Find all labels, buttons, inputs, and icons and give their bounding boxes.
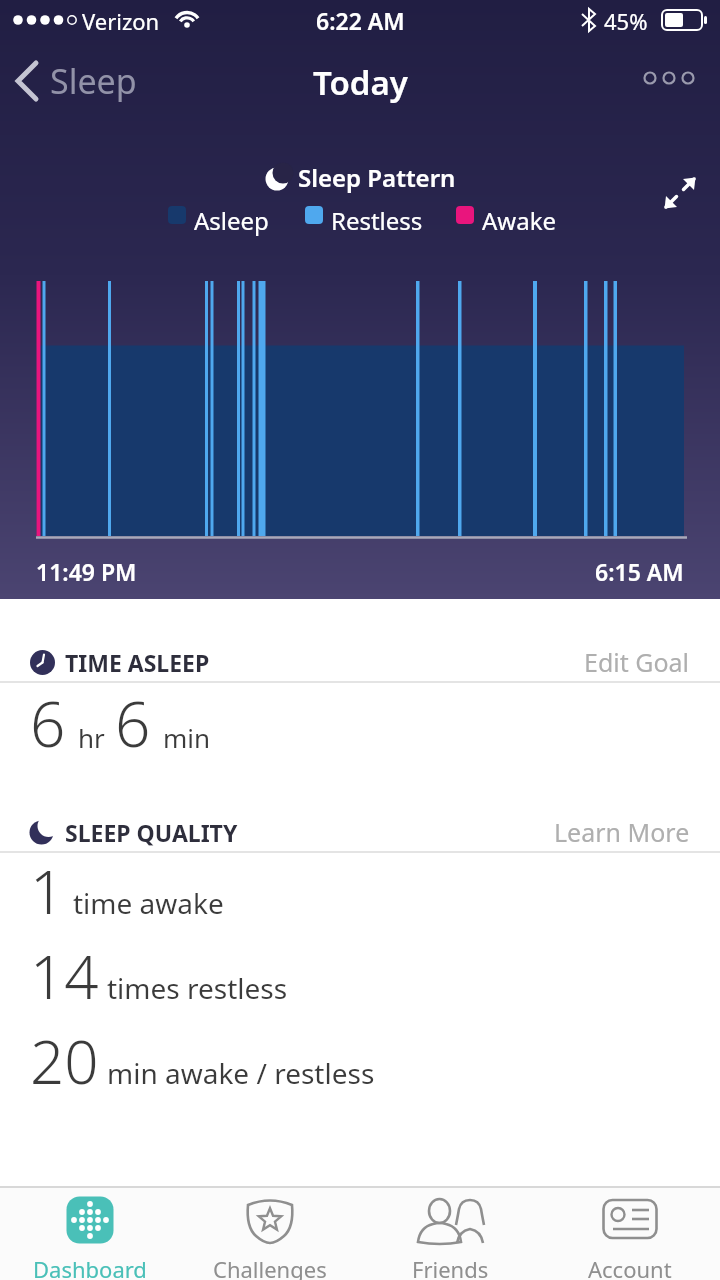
staticText: 45% xyxy=(604,6,648,36)
staticText: 20 xyxy=(30,1020,99,1102)
staticText: Dashboard xyxy=(33,1254,147,1280)
staticText: Asleep xyxy=(194,204,269,237)
staticText: 6:22 AM xyxy=(316,5,405,36)
staticText: times restless xyxy=(107,969,288,1007)
staticText: Account xyxy=(588,1254,672,1280)
staticText: min awake / restless xyxy=(107,1054,375,1092)
staticText: SLEEP QUALITY xyxy=(65,817,238,848)
staticText: hr xyxy=(78,720,105,755)
staticText: 6 xyxy=(115,681,151,765)
button[interactable] xyxy=(656,170,704,218)
button[interactable]: Sleep xyxy=(12,58,137,104)
staticText: Verizon xyxy=(82,6,160,36)
staticText: Awake xyxy=(482,204,557,237)
staticText: Friends xyxy=(412,1254,489,1280)
staticText: 11:49 PM xyxy=(36,556,137,587)
staticText: Learn More xyxy=(554,815,690,849)
staticText: Sleep Pattern xyxy=(298,161,456,194)
staticText: Edit Goal xyxy=(584,645,690,679)
button[interactable] xyxy=(635,62,701,94)
button[interactable]: Learn More xyxy=(554,815,690,849)
button[interactable]: Friends xyxy=(360,1188,540,1280)
staticText: Challenges xyxy=(213,1254,327,1280)
button[interactable]: Edit Goal xyxy=(584,645,690,679)
button[interactable]: Dashboard xyxy=(0,1188,180,1280)
button[interactable]: Challenges xyxy=(180,1188,360,1280)
button[interactable]: Account xyxy=(540,1188,720,1280)
staticText: 6:15 AM xyxy=(595,556,684,587)
staticText: Sleep xyxy=(50,58,137,104)
staticText: min xyxy=(163,720,211,755)
staticText: 1 xyxy=(30,850,65,932)
staticText: 14 xyxy=(30,935,99,1017)
staticText: TIME ASLEEP xyxy=(65,647,210,678)
staticText: time awake xyxy=(73,884,224,922)
staticText: 6 xyxy=(30,681,66,765)
staticText: Restless xyxy=(331,204,423,237)
staticText: Today xyxy=(313,60,408,105)
